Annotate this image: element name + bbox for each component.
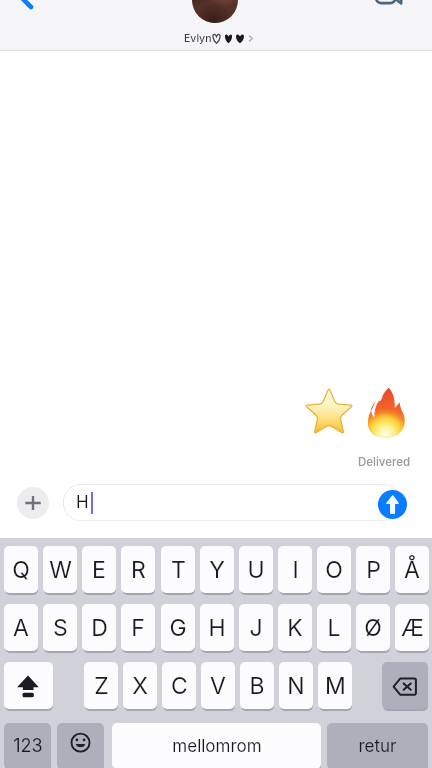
button[interactable]: Z (84, 662, 118, 709)
staticText: Å (404, 556, 420, 584)
button[interactable]: Evlyn (184, 32, 253, 45)
staticText: C (171, 672, 188, 700)
button[interactable]: Shift (4, 662, 53, 709)
staticText: D (91, 614, 108, 642)
staticText: Ø (364, 614, 382, 642)
staticText: F (131, 614, 145, 642)
staticText: O (325, 556, 343, 584)
staticText: P (366, 556, 381, 584)
button[interactable]: Backspace (382, 662, 428, 709)
button[interactable]: Y (200, 546, 234, 593)
button[interactable]: C (162, 662, 196, 709)
staticText: W (49, 556, 72, 584)
button[interactable]: Æ (395, 604, 429, 651)
button[interactable]: U (239, 546, 273, 593)
staticText: T (171, 556, 186, 584)
button[interactable]: Emoji (57, 723, 104, 768)
button[interactable]: 123 (4, 723, 51, 768)
button[interactable]: V (201, 662, 235, 709)
button[interactable] (192, 0, 238, 23)
button[interactable]: I (278, 546, 312, 593)
staticText: A (13, 614, 29, 642)
staticText: V (210, 672, 226, 700)
staticText: Æ (401, 614, 424, 642)
button[interactable]: H (63, 484, 402, 521)
staticText: J (249, 614, 263, 642)
button[interactable]: P (356, 546, 390, 593)
staticText: K (287, 614, 303, 642)
staticText: H (76, 492, 89, 513)
button[interactable]: K (278, 604, 312, 651)
button[interactable]: M (318, 662, 352, 709)
button[interactable]: R (121, 546, 155, 593)
staticText: X (132, 672, 148, 700)
button[interactable]: D (82, 604, 116, 651)
staticText: Q (12, 556, 30, 584)
staticText: Evlyn (184, 32, 212, 45)
staticText: U (247, 556, 265, 584)
button[interactable]: B (240, 662, 274, 709)
button[interactable]: T (161, 546, 195, 593)
staticText: Delivered (358, 455, 411, 469)
button[interactable]: A (4, 604, 38, 651)
button[interactable]: H (200, 604, 234, 651)
staticText: M (325, 672, 346, 700)
button[interactable]: W (43, 546, 77, 593)
staticText: H (208, 614, 226, 642)
staticText: I (292, 556, 299, 584)
staticText: E (92, 556, 106, 584)
button[interactable]: O (317, 546, 351, 593)
staticText: L (327, 614, 341, 642)
button[interactable]: Add attachment (17, 487, 49, 519)
button[interactable]: Ø (356, 604, 390, 651)
button[interactable]: FaceTime video call (370, 0, 414, 20)
staticText: R (131, 556, 146, 584)
button[interactable]: X (123, 662, 157, 709)
staticText: S (53, 614, 68, 642)
button[interactable]: mellomrom (112, 723, 321, 768)
button[interactable]: Send (378, 490, 407, 519)
button[interactable]: Q (4, 546, 38, 593)
staticText: Z (94, 672, 109, 700)
staticText: mellomrom (172, 736, 262, 757)
button[interactable]: G (161, 604, 195, 651)
staticText: G (169, 614, 187, 642)
staticText: retur (358, 736, 397, 757)
button[interactable]: N (279, 662, 313, 709)
button[interactable]: Å (395, 546, 429, 593)
button[interactable]: L (317, 604, 351, 651)
button[interactable]: Back (0, 0, 44, 18)
staticText: N (287, 672, 305, 700)
staticText: 123 (13, 735, 43, 757)
button[interactable]: S (43, 604, 77, 651)
staticText: Y (209, 556, 225, 584)
button[interactable]: retur (327, 723, 428, 768)
staticText: B (249, 672, 265, 700)
button[interactable]: J (239, 604, 273, 651)
button[interactable]: F (121, 604, 155, 651)
button[interactable]: E (82, 546, 116, 593)
